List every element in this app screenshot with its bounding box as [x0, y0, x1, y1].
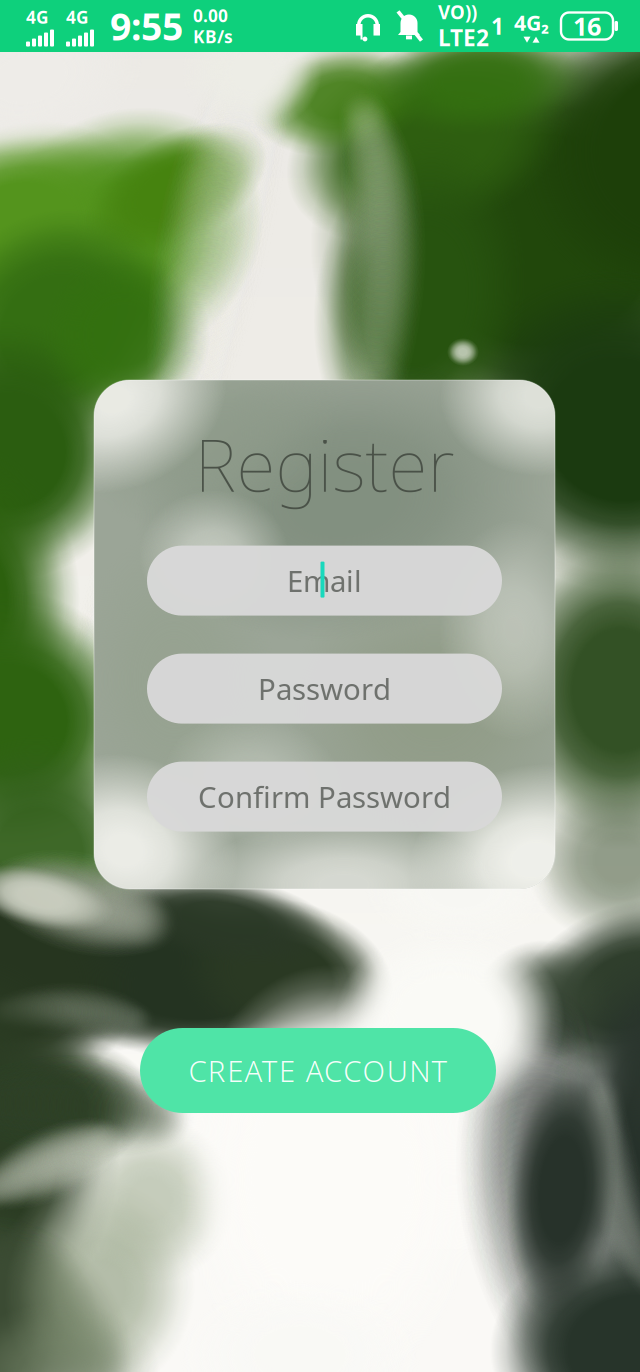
button[interactable]: CREATE ACCOUNT: [140, 1028, 496, 1113]
button[interactable]: Password: [147, 654, 502, 724]
staticText: Register: [194, 416, 454, 512]
staticText: 4G: [26, 5, 49, 28]
staticText: Confirm Password: [198, 777, 451, 816]
staticText: Password: [258, 669, 391, 708]
button[interactable]: Confirm Password: [147, 762, 502, 832]
button[interactable]: Email: [147, 546, 502, 616]
staticText: CREATE ACCOUNT: [189, 1051, 447, 1090]
staticText: VO)): [438, 0, 477, 24]
staticText: 16: [573, 9, 601, 43]
staticText: 4G₂: [514, 8, 549, 37]
staticText: 0.00: [193, 4, 228, 27]
staticText: Email: [287, 561, 362, 600]
staticText: 4G: [66, 5, 89, 28]
staticText: 1: [491, 11, 504, 41]
staticText: LTE2: [438, 22, 489, 52]
staticText: KB/s: [193, 25, 233, 48]
staticText: 9:55: [110, 1, 183, 51]
